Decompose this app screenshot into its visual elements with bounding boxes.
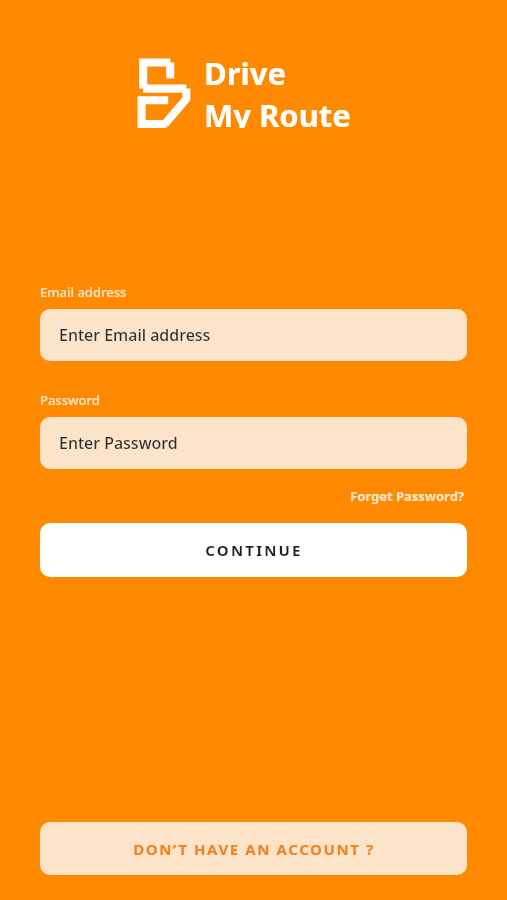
staticText: My Route bbox=[204, 94, 351, 128]
button[interactable]: Forget Password? bbox=[348, 485, 467, 507]
staticText: CONTINUE bbox=[205, 540, 303, 560]
button[interactable]: Enter Password bbox=[40, 417, 467, 469]
staticText: DON’T HAVE AN ACCOUNT ? bbox=[133, 839, 375, 859]
staticText: Enter Email address bbox=[59, 324, 211, 346]
button[interactable]: Enter Email address bbox=[40, 309, 467, 361]
staticText: Drive bbox=[204, 52, 287, 94]
staticText: Forget Password? bbox=[350, 487, 465, 505]
button[interactable]: DON’T HAVE AN ACCOUNT ? bbox=[40, 822, 467, 875]
staticText: Password bbox=[40, 391, 100, 409]
staticText: Enter Password bbox=[59, 432, 178, 454]
button[interactable]: CONTINUE bbox=[40, 523, 467, 577]
staticText: Email address bbox=[40, 283, 127, 301]
